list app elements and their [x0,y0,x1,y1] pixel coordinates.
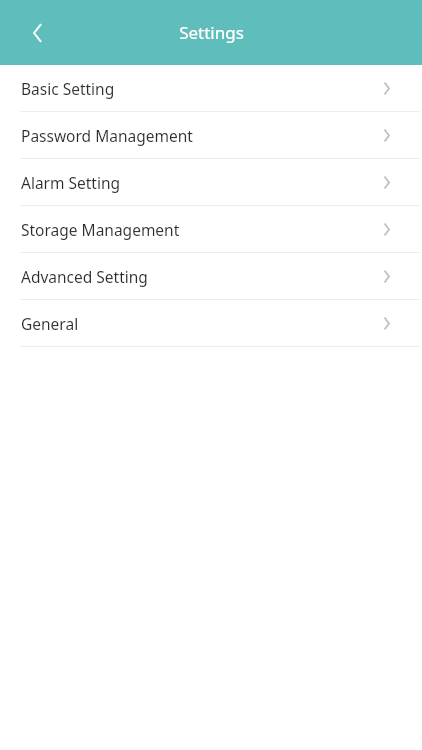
button[interactable]: Alarm Setting [0,159,422,205]
button[interactable]: Storage Management [0,206,422,252]
staticText: General [21,313,382,334]
button[interactable]: Advanced Setting [0,253,422,299]
button[interactable]: Basic Setting [0,65,422,111]
button[interactable]: General [0,300,422,346]
button[interactable]: Back [18,13,58,53]
staticText: Storage Management [21,219,382,240]
staticText: Basic Setting [21,78,382,99]
staticText: Advanced Setting [21,266,382,287]
staticText: Alarm Setting [21,172,382,193]
button[interactable]: Password Management [0,112,422,158]
staticText: Settings [179,21,244,44]
staticText: Password Management [21,125,382,146]
